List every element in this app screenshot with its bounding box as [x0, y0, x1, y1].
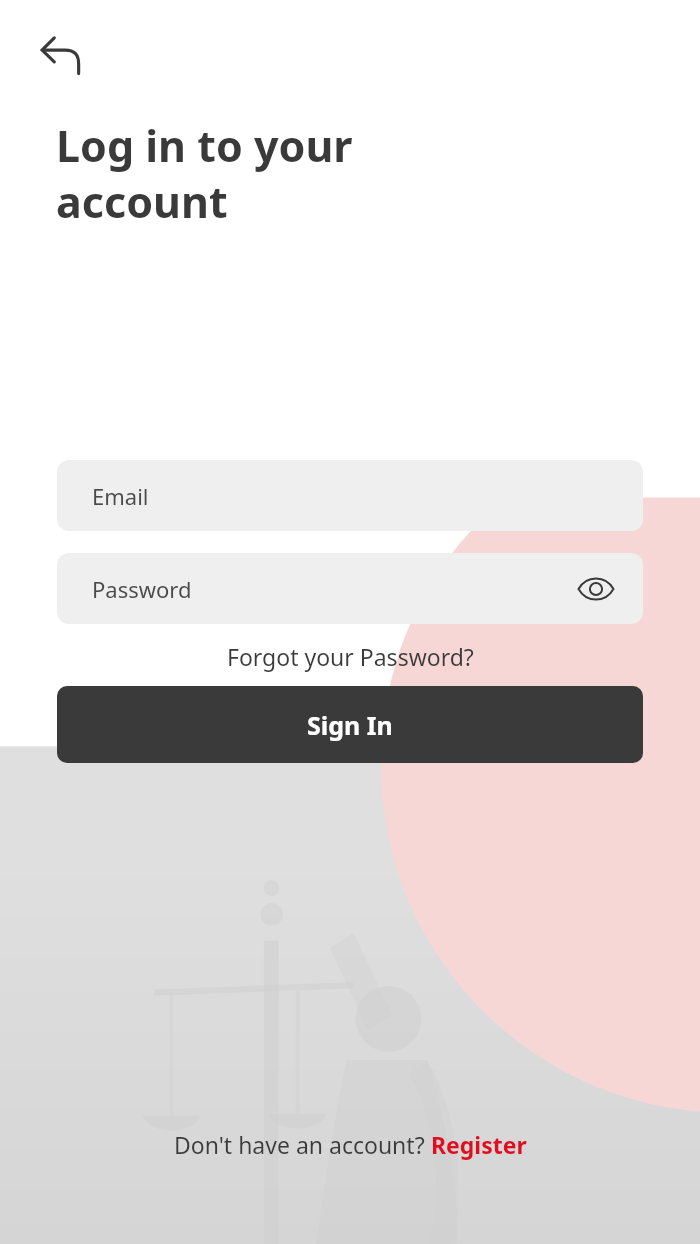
button[interactable]: Back	[32, 24, 90, 82]
staticText: Email	[92, 481, 149, 511]
button[interactable]: Email	[57, 460, 643, 531]
button[interactable]: Register	[431, 1129, 527, 1160]
staticText: Register	[431, 1129, 527, 1160]
staticText: Forgot your Password?	[227, 641, 474, 672]
staticText: Sign In	[307, 708, 393, 742]
button[interactable]: Sign In	[57, 686, 643, 763]
staticText: Log in to your account	[56, 116, 353, 231]
button[interactable]: Show password	[573, 566, 619, 612]
staticText: Password	[92, 574, 192, 604]
button[interactable]: Forgot your Password?	[217, 637, 484, 676]
staticText: Don't have an account?	[174, 1129, 431, 1160]
button[interactable]: Password	[57, 553, 643, 624]
